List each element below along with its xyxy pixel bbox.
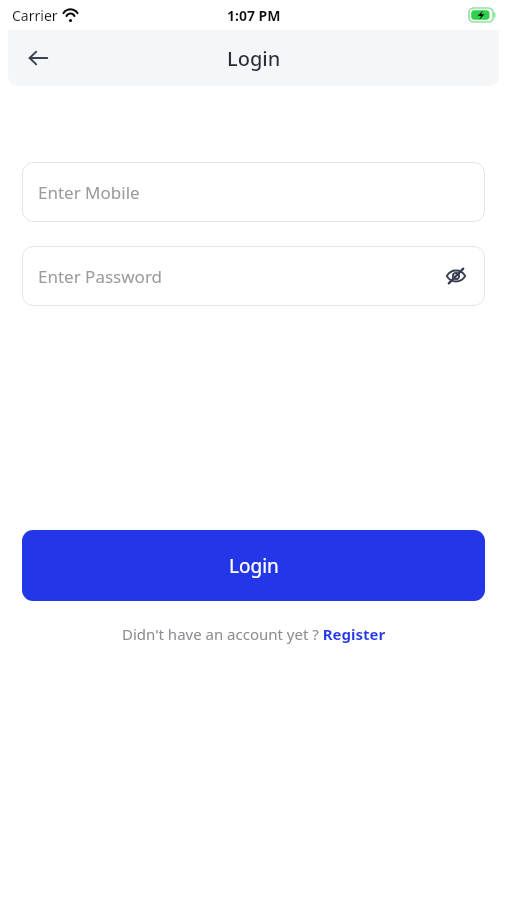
button[interactable]: Show password — [435, 255, 477, 297]
staticText: Didn't have an account yet ? Register — [122, 624, 386, 644]
button[interactable]: Back — [14, 34, 62, 82]
staticText: Login — [229, 553, 279, 579]
button[interactable]: Didn't have an account yet ? Register — [116, 620, 392, 648]
staticText: Carrier — [12, 6, 58, 25]
staticText: Login — [227, 45, 281, 72]
staticText: 1:07 PM — [227, 6, 281, 25]
button[interactable]: Enter Password — [22, 246, 485, 306]
staticText: Enter Mobile — [38, 181, 140, 204]
staticText: Enter Password — [38, 265, 163, 288]
button[interactable]: Enter Mobile — [22, 162, 485, 222]
button[interactable]: Login — [22, 530, 485, 601]
